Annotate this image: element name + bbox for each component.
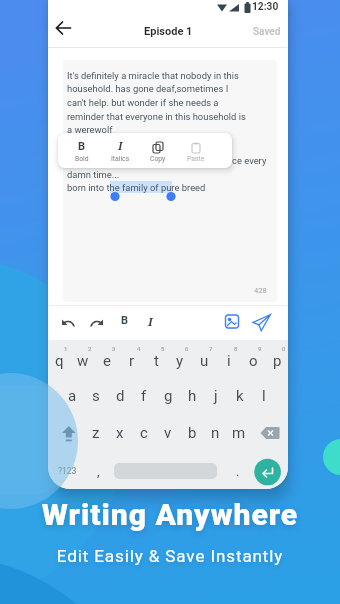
staticText: c [140, 424, 148, 442]
staticText: o [249, 352, 258, 370]
button[interactable] [258, 422, 284, 444]
staticText: 7 [209, 345, 213, 352]
staticText: 9 [258, 345, 262, 352]
staticText: v [164, 424, 172, 442]
button[interactable]: i [217, 351, 241, 371]
button[interactable]: g [156, 385, 180, 407]
staticText: y [176, 352, 184, 370]
staticText: n [211, 424, 220, 442]
button[interactable]: , [88, 459, 108, 483]
button[interactable]: Saved [253, 26, 281, 38]
staticText: It's definitely a miracle that nobody in… [67, 70, 239, 81]
button[interactable]: r [120, 351, 144, 371]
staticText: ?123 [58, 466, 77, 476]
staticText: can't help. but wonder if she needs a [67, 97, 219, 108]
staticText: x [116, 424, 124, 442]
button[interactable]: a [60, 385, 84, 407]
staticText: 2 [88, 345, 92, 352]
staticText: g [164, 387, 173, 405]
staticText: damn time... [67, 169, 120, 180]
button[interactable]: j [204, 385, 228, 407]
staticText: p [273, 352, 282, 370]
button[interactable]: I [148, 314, 153, 330]
staticText: d [116, 387, 125, 405]
staticText: t [154, 352, 159, 370]
button[interactable]: q [48, 351, 71, 371]
button[interactable]: Copy [139, 133, 177, 168]
button[interactable] [254, 459, 281, 486]
button[interactable] [250, 309, 276, 335]
button[interactable]: d [108, 385, 132, 407]
button[interactable]: o [241, 351, 265, 371]
button[interactable]: h [180, 385, 204, 407]
staticText: 12:30 [252, 1, 279, 13]
staticText: Paste [187, 155, 205, 163]
button[interactable] [56, 422, 82, 444]
button[interactable]: l [252, 385, 276, 407]
staticText: h [188, 387, 197, 405]
button[interactable]: m [227, 422, 251, 444]
button[interactable]: u [192, 351, 216, 371]
button[interactable]: p [265, 351, 288, 371]
button[interactable]: t [144, 351, 168, 371]
staticText: u [200, 352, 209, 370]
button[interactable] [84, 309, 110, 335]
staticText: 6 [185, 345, 189, 352]
staticText: b [188, 424, 197, 442]
staticText: household. has gone deaf,sometimes I [67, 83, 229, 94]
staticText: Bold [75, 155, 89, 163]
button[interactable]: . [228, 459, 248, 483]
staticText: Italics [111, 155, 130, 163]
staticText: w [77, 352, 89, 370]
button[interactable] [48, 16, 88, 47]
staticText: born into the family of pure breed [67, 182, 206, 193]
button[interactable]: c [132, 422, 156, 444]
button[interactable]: B [63, 133, 101, 168]
button[interactable]: B [121, 314, 129, 327]
button[interactable]: I [101, 133, 139, 168]
staticText: f [141, 387, 147, 405]
staticText: 5 [161, 345, 165, 352]
button[interactable]: y [168, 351, 192, 371]
staticText: a werewolf [67, 124, 113, 135]
staticText: s [92, 387, 100, 405]
button[interactable] [220, 309, 246, 335]
button[interactable]: s [84, 385, 108, 407]
staticText: Copy [150, 155, 166, 163]
staticText: 428 [254, 286, 267, 295]
button[interactable] [56, 309, 82, 335]
staticText: 8 [234, 345, 238, 352]
button[interactable]: f [132, 385, 156, 407]
staticText: 3 [112, 345, 116, 352]
staticText: ce every [232, 155, 267, 166]
staticText: Episode 1 [144, 25, 193, 38]
staticText: e [103, 352, 111, 370]
staticText: a [68, 387, 77, 405]
staticText: I [118, 138, 123, 153]
button[interactable]: Paste [177, 133, 215, 168]
staticText: l [262, 387, 266, 405]
button[interactable]: w [71, 351, 95, 371]
button[interactable]: x [108, 422, 132, 444]
staticText: reminder that everyone in this household… [67, 111, 246, 122]
staticText: . [236, 464, 240, 479]
button[interactable]: v [156, 422, 180, 444]
button[interactable]: z [84, 422, 108, 444]
button[interactable]: Writing Anywhere [0, 497, 340, 532]
staticText: r [129, 352, 135, 370]
staticText: , [97, 464, 100, 479]
staticText: q [55, 352, 64, 370]
button[interactable]: n [203, 422, 227, 444]
staticText: j [214, 387, 218, 405]
button[interactable]: ?123 [52, 459, 82, 483]
button[interactable]: b [180, 422, 204, 444]
staticText: i [227, 352, 231, 370]
button[interactable]: Edit Easily & Save Instantly [0, 546, 340, 566]
button[interactable]: e [95, 351, 119, 371]
staticText: 1 [64, 345, 68, 352]
staticText: k [236, 387, 244, 405]
staticText: 4 [137, 345, 141, 352]
button[interactable]: k [228, 385, 252, 407]
staticText: B [78, 140, 86, 153]
